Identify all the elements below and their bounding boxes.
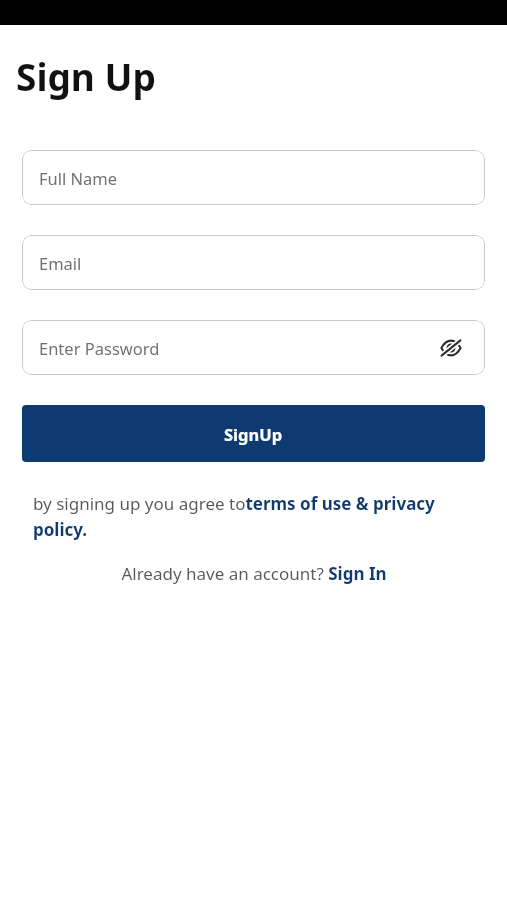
button[interactable]: Enter Password (22, 320, 485, 375)
staticText: Email (39, 252, 82, 274)
button[interactable]: Full Name (22, 150, 485, 205)
staticText: Full Name (39, 167, 118, 189)
button[interactable]: Show password (438, 335, 464, 361)
staticText: SignUp (224, 423, 283, 445)
button[interactable]: Already have an account? Sign In (0, 562, 507, 585)
button[interactable]: SignUp (22, 405, 485, 462)
staticText: Sign Up (16, 51, 156, 101)
staticText: by signing up you agree toterms of use &… (33, 492, 479, 541)
staticText: Enter Password (39, 337, 160, 359)
staticText: Already have an account? Sign In (121, 562, 387, 585)
button[interactable]: by signing up you agree toterms of use &… (33, 492, 479, 541)
button[interactable]: Email (22, 235, 485, 290)
